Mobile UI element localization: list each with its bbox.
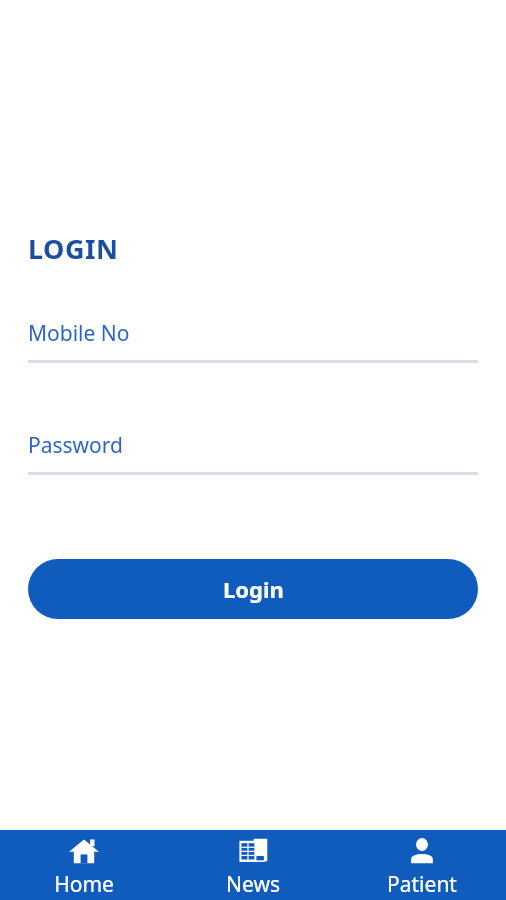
button[interactable]: Password bbox=[28, 431, 478, 475]
staticText: Patient bbox=[387, 870, 457, 899]
button[interactable]: Login bbox=[28, 559, 478, 619]
button[interactable]: Patient bbox=[337, 830, 506, 900]
staticText: Mobile No bbox=[28, 319, 130, 348]
staticText: Home bbox=[54, 870, 114, 899]
button[interactable]: News bbox=[168, 830, 337, 900]
staticText: Login bbox=[223, 574, 284, 604]
staticText: LOGIN bbox=[28, 230, 119, 267]
staticText: News bbox=[226, 870, 280, 899]
button[interactable]: Mobile No bbox=[28, 319, 478, 363]
button[interactable]: Home bbox=[0, 830, 168, 900]
staticText: Password bbox=[28, 431, 123, 460]
